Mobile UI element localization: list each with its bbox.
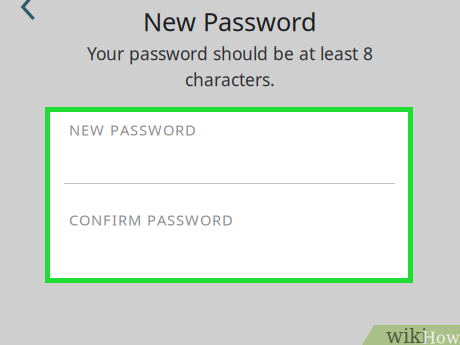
staticText: Your password should be at least 8 — [87, 42, 373, 65]
button[interactable]: C O N F I R M P A S S W O R D — [50, 184, 408, 278]
staticText: wiki — [386, 324, 427, 345]
button[interactable]: N E W P A S S W O R D — [50, 112, 408, 183]
staticText: characters. — [185, 68, 275, 91]
staticText: N E W P A S S W O R D — [69, 120, 196, 139]
button[interactable]: Back — [21, 0, 57, 30]
staticText: New Password — [143, 5, 317, 38]
staticText: How — [422, 329, 460, 345]
staticText: C O N F I R M P A S S W O R D — [69, 210, 233, 229]
